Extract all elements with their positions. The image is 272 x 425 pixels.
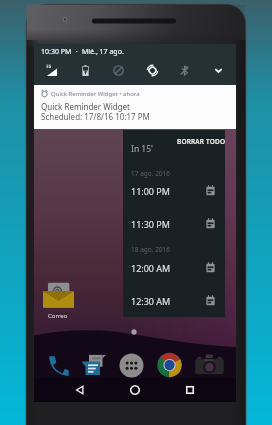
staticText: In 15' (131, 143, 153, 155)
button[interactable]: 12:30 AM (123, 291, 225, 313)
button[interactable]: 11:30 PM (123, 214, 225, 236)
button[interactable]: Phone (46, 355, 69, 376)
staticText: Correo (48, 312, 68, 320)
button[interactable]: Expand (212, 64, 225, 77)
button[interactable]: Correo (35, 282, 81, 320)
staticText: 10:30 PM ・ Mié., 17 ago. (41, 47, 124, 57)
button[interactable]: Quick Reminder Widget • ahora (34, 85, 236, 129)
button[interactable]: Messages (81, 354, 106, 376)
button[interactable]: Auto rotate (146, 64, 159, 77)
staticText: 11:00 PM (131, 185, 170, 197)
staticText: 17 ago. 2016 (131, 169, 171, 178)
button[interactable]: Mobile data (45, 64, 58, 77)
button[interactable]: Camera (195, 354, 224, 376)
button[interactable]: Recents (181, 381, 199, 399)
button[interactable]: BORRAR TODO (173, 134, 230, 149)
staticText: 12:30 AM (131, 295, 171, 307)
staticText: BORRAR TODO (177, 137, 226, 146)
staticText: Quick Reminder Widget • ahora (51, 90, 140, 98)
button[interactable]: Do not disturb (112, 64, 125, 77)
button[interactable]: Chrome (156, 352, 183, 378)
button[interactable]: Battery (79, 64, 92, 77)
button[interactable]: Back (71, 381, 89, 399)
button[interactable]: Bluetooth (178, 64, 191, 77)
staticText: Scheduled: 17/8/16 10:17 PM (41, 111, 150, 122)
button[interactable]: All apps (119, 353, 144, 378)
button[interactable]: 12:00 AM (123, 258, 225, 280)
staticText: 18 ago. 2016 (131, 245, 171, 254)
button[interactable]: Home (126, 381, 144, 399)
button[interactable]: 11:00 PM (123, 181, 225, 203)
staticText: Quick Reminder Widget (41, 101, 130, 112)
staticText: 11:30 PM (131, 218, 170, 230)
staticText: 12:00 AM (131, 262, 171, 274)
